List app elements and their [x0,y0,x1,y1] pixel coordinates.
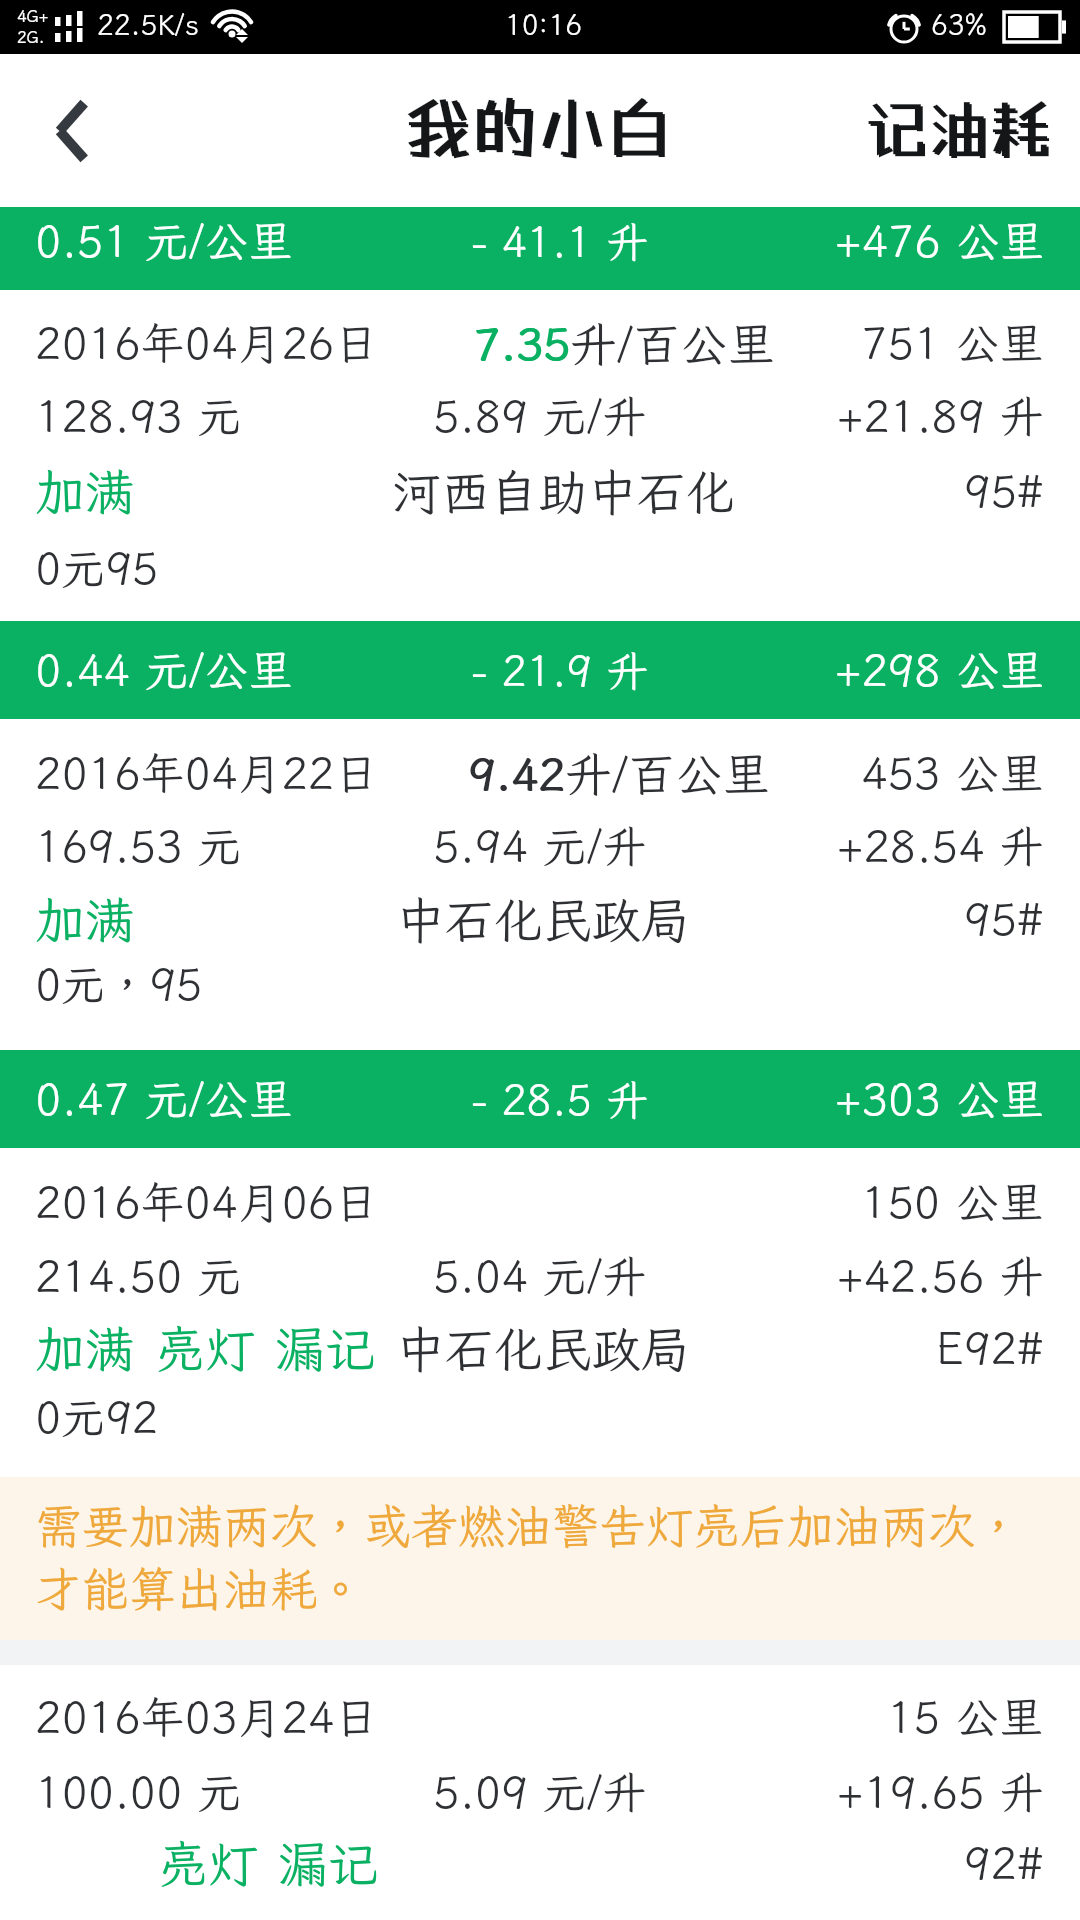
staticText: 才能算出油耗。 [35,1557,364,1619]
staticText: 4G+ [17,5,49,26]
staticText: 150 公里 [861,1173,1044,1231]
staticText: 记油耗 [867,94,1054,167]
staticText: 2016年03月24日 [35,1688,379,1746]
staticText: 漏记 [275,1315,375,1381]
staticText: 亮灯 [158,1830,258,1896]
staticText: 0元，95 [35,955,203,1013]
button[interactable]: 0.47 元/公里 [0,1050,1080,1477]
button[interactable]: 2016年03月24日 [0,1665,1080,1920]
staticText: E92# [936,1319,1044,1377]
staticText: - 41.1 升 [472,214,649,269]
staticText: 128.93 元 [35,387,242,445]
staticText: 记油耗 [865,92,1052,165]
staticText: 9.42 [468,744,565,803]
staticText: +298 公里 [835,641,1044,699]
staticText: +28.54 升 [837,817,1044,875]
staticText: 751 公里 [861,314,1044,372]
staticText: 15 公里 [887,1688,1044,1746]
staticText: +303 公里 [835,1070,1044,1128]
button[interactable]: 记油耗 [865,54,1052,207]
staticText: 95# [964,890,1044,948]
staticText: 7.35 [474,314,571,373]
staticText: 5.04 元/升 [433,1247,647,1305]
staticText: 100.00 元 [35,1763,242,1821]
staticText: 0.44 元/公里 [35,641,293,699]
staticText: 9.42 [469,744,566,803]
staticText: 63% [931,6,988,43]
staticText: 我的小白 [404,87,672,166]
staticText: 亮灯 [155,1315,255,1381]
staticText: +42.56 升 [837,1247,1044,1305]
staticText: 加满 [35,458,135,524]
button[interactable]: Back [0,54,142,207]
staticText: +476 公里 [835,212,1044,270]
staticText: 5.89 元/升 [433,387,647,445]
staticText: +19.65 升 [837,1763,1044,1821]
staticText: 453 公里 [861,744,1044,802]
staticText: 升/百公里 [565,742,770,804]
staticText: 河西自助中石化 [392,459,736,524]
staticText: 2016年04月06日 [35,1173,379,1231]
staticText: 中石化民政局 [396,887,691,952]
staticText: 0.51 元/公里 [35,212,293,270]
button[interactable]: 0.44 元/公里 [0,621,1080,1050]
staticText: 我的小白 [406,89,674,168]
staticText: 95# [964,462,1044,520]
staticText: 加满 [35,886,135,952]
staticText: 22.5K/s [97,6,199,43]
staticText: - 21.9 升 [472,643,649,698]
button[interactable]: 0.51 元/公里 [0,207,1080,620]
staticText: 中石化民政局 [396,1316,691,1381]
staticText: 升/百公里 [570,312,775,374]
staticText: 5.09 元/升 [433,1763,647,1821]
staticText: 7.35 [473,314,570,373]
staticText: 2016年04月26日 [35,314,379,372]
staticText: 2G. [17,26,45,47]
staticText: 0元95 [35,539,159,597]
staticText: 10:16 [505,6,583,43]
staticText: 169.53 元 [35,817,242,875]
staticText: 92# [964,1834,1044,1892]
staticText: 加满 [35,1315,135,1381]
staticText: 2016年04月22日 [35,744,379,802]
staticText: 0元92 [35,1388,159,1446]
staticText: 214.50 元 [35,1247,242,1305]
staticText: - 28.5 升 [472,1072,649,1127]
staticText: 需要加满两次，或者燃油警告灯亮后加油两次， [35,1494,1022,1556]
staticText: 5.94 元/升 [433,817,647,875]
staticText: +21.89 升 [837,387,1044,445]
staticText: 0.47 元/公里 [35,1070,293,1128]
staticText: 漏记 [278,1830,378,1896]
